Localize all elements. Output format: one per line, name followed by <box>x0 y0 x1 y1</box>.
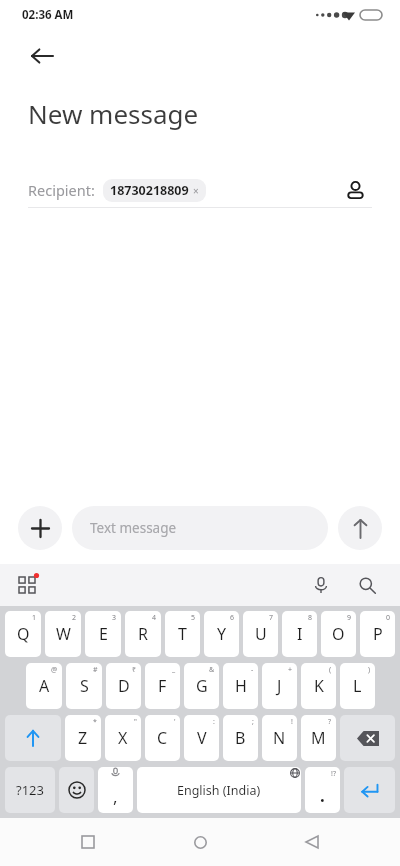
staticText: Q <box>17 623 30 645</box>
button[interactable]: Shift <box>5 715 61 761</box>
staticText: N <box>273 727 286 749</box>
staticText: New message <box>28 96 199 131</box>
staticText: Recipient: <box>28 180 95 200</box>
staticText: : <box>213 717 215 727</box>
button[interactable]: Space <box>137 767 301 813</box>
button[interactable]: Emoji <box>59 767 94 813</box>
staticText: P <box>373 623 383 645</box>
staticText: 2 <box>72 613 77 623</box>
staticText: R <box>138 623 148 645</box>
staticText: 6 <box>230 613 235 623</box>
button[interactable]: ! <box>262 715 297 761</box>
staticText: H <box>235 675 247 697</box>
staticText: F <box>158 675 167 697</box>
staticText: 9 <box>347 613 352 623</box>
staticText: D <box>118 675 130 697</box>
staticText: Z <box>78 727 88 749</box>
staticText: × <box>193 184 199 198</box>
button[interactable]: Text message <box>72 506 328 550</box>
staticText: @ <box>51 665 58 675</box>
staticText: E <box>99 623 108 645</box>
button[interactable]: Send <box>338 506 382 550</box>
staticText: ( <box>329 665 332 675</box>
button[interactable]: ? <box>301 715 336 761</box>
staticText: U <box>255 623 267 645</box>
staticText: 7 <box>269 613 274 623</box>
staticText: S <box>80 675 89 697</box>
button[interactable]: 5 <box>165 611 200 657</box>
button[interactable]: 0 <box>360 611 395 657</box>
button[interactable]: ( <box>301 663 336 709</box>
staticText: I <box>297 623 303 645</box>
button[interactable]: - <box>223 663 258 709</box>
staticText: C <box>157 727 168 749</box>
button[interactable]: 7 <box>243 611 278 657</box>
staticText: 02:36 AM <box>22 7 74 23</box>
staticText: M <box>311 727 326 749</box>
staticText: B <box>235 727 246 749</box>
staticText: 1 <box>32 613 37 623</box>
staticText: , <box>113 785 118 808</box>
button[interactable]: @ <box>26 663 62 709</box>
button[interactable]: Period <box>305 767 340 813</box>
staticText: 5 <box>191 613 196 623</box>
staticText: ) <box>368 665 371 675</box>
button[interactable]: Add attachment <box>18 506 62 550</box>
button[interactable]: Backspace <box>340 715 395 761</box>
button[interactable]: Comma <box>98 767 133 813</box>
button[interactable]: & <box>184 663 219 709</box>
button[interactable]: 1 <box>5 611 41 657</box>
button[interactable]: * <box>65 715 101 761</box>
staticText: 0 <box>386 613 391 623</box>
button[interactable]: ) <box>340 663 375 709</box>
button[interactable]: Back <box>16 30 68 82</box>
staticText: X <box>118 727 128 749</box>
button[interactable]: : <box>184 715 219 761</box>
button[interactable]: + <box>262 663 297 709</box>
staticText: W <box>56 623 71 645</box>
button[interactable]: 8 <box>282 611 317 657</box>
staticText: L <box>353 675 362 697</box>
staticText: V <box>197 727 207 749</box>
button[interactable]: Back <box>282 818 342 866</box>
staticText: A <box>39 675 50 697</box>
button[interactable]: ?123 <box>5 767 55 813</box>
button[interactable]: # <box>66 663 102 709</box>
staticText: O <box>332 623 345 645</box>
staticText: ? <box>328 717 332 727</box>
button[interactable]: ' <box>145 715 180 761</box>
button[interactable]: Enter <box>344 767 395 813</box>
staticText: G <box>196 675 208 697</box>
button[interactable]: 2 <box>45 611 81 657</box>
staticText: T <box>178 623 187 645</box>
staticText: ?123 <box>16 781 44 799</box>
staticText: ; <box>252 717 254 727</box>
button[interactable]: Keyboard menu <box>12 570 42 600</box>
staticText: # <box>93 665 98 675</box>
staticText: 3 <box>112 613 117 623</box>
staticText: & <box>209 665 215 675</box>
button[interactable]: ; <box>223 715 258 761</box>
button[interactable]: 4 <box>125 611 161 657</box>
button[interactable]: 9 <box>321 611 356 657</box>
staticText: Text message <box>90 519 177 537</box>
staticText: 4 <box>152 613 157 623</box>
staticText: ₹ <box>132 665 137 675</box>
staticText: Y <box>217 623 227 645</box>
staticText: English (India) <box>177 782 261 799</box>
staticText: ' <box>174 717 176 727</box>
staticText: " <box>134 717 137 727</box>
button[interactable]: ₹ <box>106 663 141 709</box>
button[interactable]: Search <box>352 570 382 600</box>
button[interactable]: Choose contact <box>338 173 372 207</box>
button[interactable]: _ <box>145 663 180 709</box>
button[interactable]: Recents <box>58 818 118 866</box>
staticText: . <box>320 784 325 807</box>
button[interactable]: 3 <box>85 611 121 657</box>
button[interactable]: 18730218809 <box>103 179 206 202</box>
button[interactable]: Voice input <box>306 570 336 600</box>
button[interactable]: " <box>105 715 141 761</box>
button[interactable]: Home <box>170 818 230 866</box>
staticText: * <box>93 717 97 727</box>
button[interactable]: 6 <box>204 611 239 657</box>
